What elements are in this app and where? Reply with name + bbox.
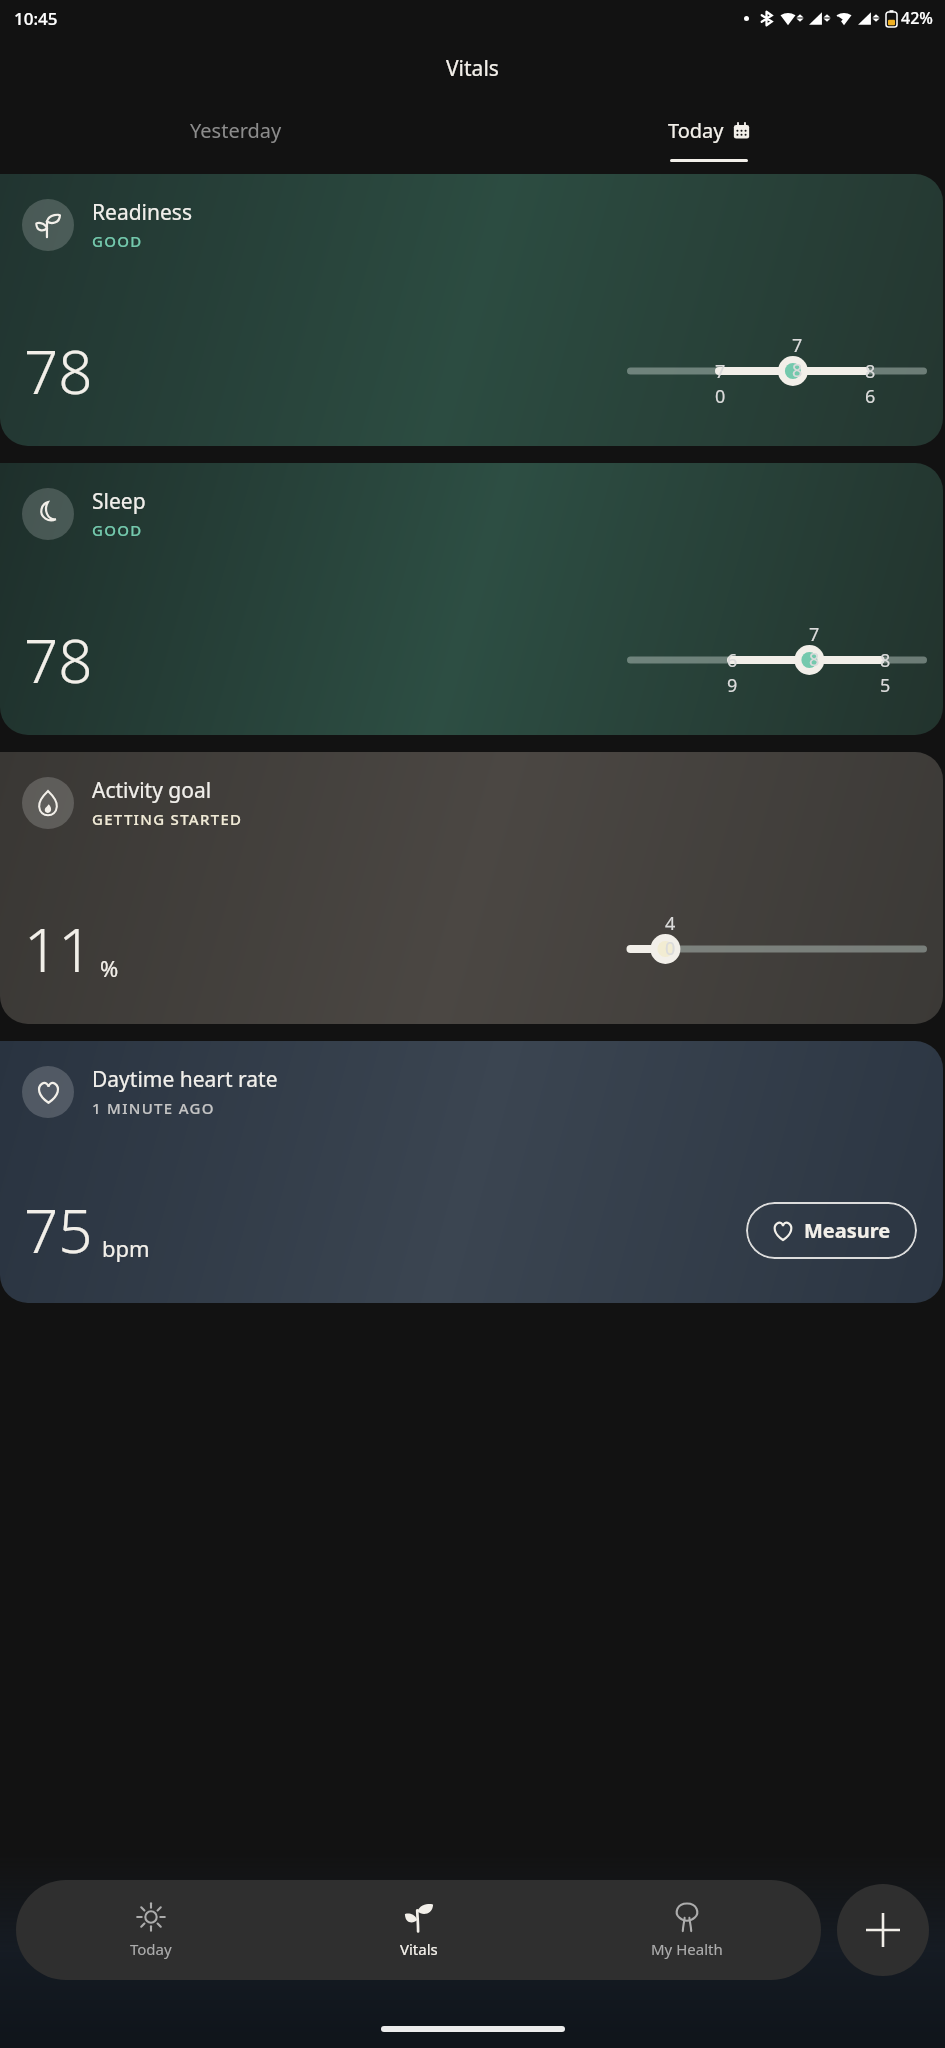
staticText: 10:45	[14, 7, 58, 30]
button[interactable]: Vitals	[285, 1880, 553, 1980]
button[interactable]: Sleep	[0, 463, 943, 735]
staticText: GOOD	[92, 520, 143, 540]
staticText: GETTING STARTED	[92, 809, 243, 829]
button[interactable]: Measure	[746, 1202, 917, 1259]
staticText: Daytime heart rate	[92, 1065, 278, 1094]
staticText: Activity goal	[92, 776, 212, 805]
staticText: 85	[880, 648, 881, 698]
staticText: Vitals	[446, 54, 499, 83]
staticText: Yesterday	[190, 117, 282, 144]
staticText: Today	[130, 1939, 172, 1959]
staticText: Vitals	[400, 1939, 438, 1959]
staticText: 69	[727, 648, 728, 698]
staticText: Sleep	[92, 487, 146, 516]
staticText: 11	[24, 908, 93, 990]
staticText: 78	[24, 619, 93, 701]
staticText: 42%	[901, 7, 933, 29]
staticText: 86	[865, 359, 866, 409]
staticText: 70	[715, 359, 716, 409]
staticText: Readiness	[92, 198, 192, 227]
staticText: Today	[668, 117, 724, 144]
staticText: 78	[24, 330, 93, 412]
button[interactable]: Readiness	[0, 174, 943, 446]
staticText: 1 MINUTE AGO	[92, 1098, 215, 1118]
staticText: Measure	[804, 1217, 891, 1244]
button[interactable]: Today	[16, 1880, 285, 1980]
button[interactable]: Yesterday	[0, 107, 472, 154]
button[interactable]: Activity goal	[0, 752, 943, 1024]
staticText: bpm	[102, 1233, 150, 1263]
staticText: My Health	[651, 1939, 723, 1959]
staticText: 78	[809, 622, 810, 672]
staticText: GOOD	[92, 231, 143, 251]
button[interactable]: Today	[472, 107, 945, 162]
staticText: 75	[24, 1189, 93, 1271]
staticText: 40	[665, 911, 666, 961]
staticText: %	[100, 953, 119, 983]
button[interactable]: Daytime heart rate	[0, 1041, 943, 1303]
button[interactable]: My Health	[553, 1880, 821, 1980]
staticText: 78	[792, 333, 793, 383]
button[interactable]: Add	[837, 1884, 929, 1976]
